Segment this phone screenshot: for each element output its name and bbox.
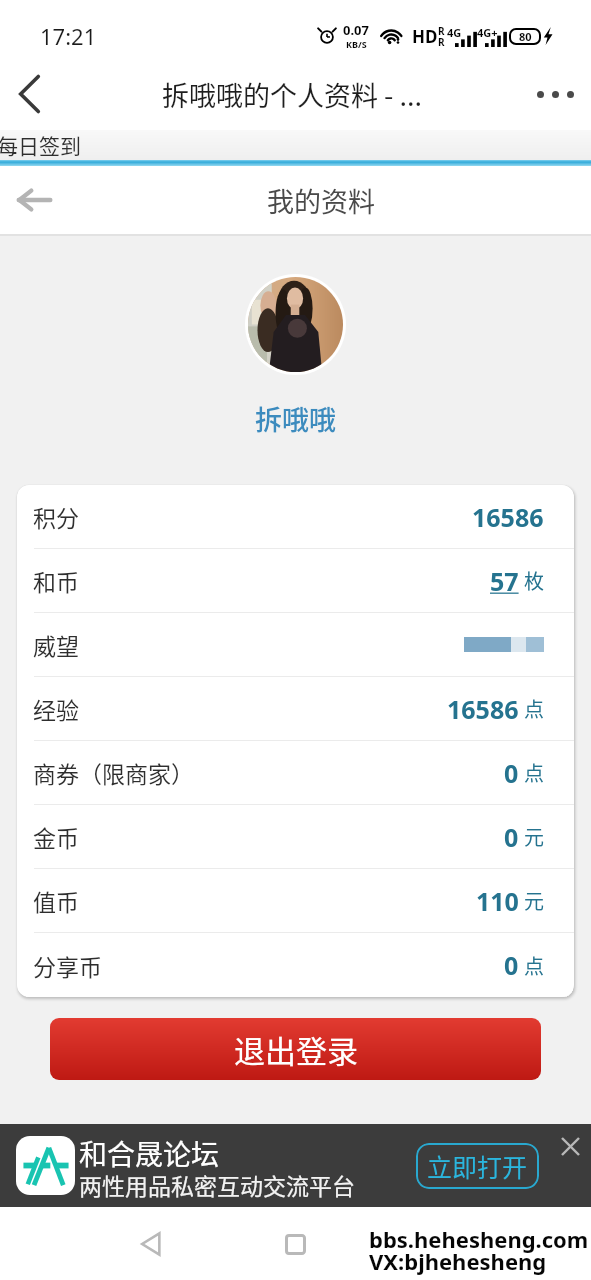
button[interactable]: 和币: [17, 549, 574, 613]
button[interactable]: 立即打开: [416, 1143, 539, 1189]
staticText: 0.07: [343, 21, 369, 39]
staticText: R: [438, 35, 445, 49]
button[interactable]: Home: [272, 1221, 318, 1267]
staticText: 80: [519, 29, 532, 44]
staticText: KB/S: [346, 38, 367, 50]
staticText: 0: [504, 820, 519, 854]
button[interactable]: 积分: [17, 485, 574, 549]
staticText: 17:21: [40, 21, 97, 51]
staticText: 威望: [33, 628, 79, 661]
staticText: 分享币: [33, 949, 102, 982]
button[interactable]: 威望: [17, 613, 574, 677]
button[interactable]: More options: [527, 66, 583, 122]
button[interactable]: Back: [6, 172, 62, 228]
staticText: 16586: [472, 500, 544, 534]
staticText: 点: [524, 758, 544, 787]
button[interactable]: 每日签到: [0, 130, 591, 160]
staticText: 金币: [33, 820, 79, 853]
staticText: 拆哦哦: [255, 399, 336, 438]
button[interactable]: 经验: [17, 677, 574, 741]
button[interactable]: 商券（限商家）: [17, 741, 574, 805]
button[interactable]: Back: [1, 66, 57, 122]
staticText: 拆哦哦的个人资料 - ...: [162, 75, 422, 114]
staticText: 和币: [33, 564, 79, 597]
staticText: HD: [412, 25, 438, 48]
staticText: 4G+: [477, 25, 498, 40]
button[interactable]: 金币: [17, 805, 574, 869]
staticText: 值币: [33, 884, 79, 917]
staticText: VX:bjhehesheng: [369, 1246, 547, 1276]
staticText: 元: [524, 886, 544, 915]
staticText: 4G: [447, 25, 462, 40]
button[interactable]: Close ad: [555, 1131, 585, 1161]
staticText: 退出登录: [234, 1027, 358, 1072]
button[interactable]: Profile photo: [248, 277, 343, 372]
button[interactable]: 分享币: [17, 933, 574, 997]
button[interactable]: 值币: [17, 869, 574, 933]
staticText: 0: [504, 756, 519, 790]
staticText: 0: [504, 948, 519, 982]
staticText: 商券（限商家）: [33, 756, 194, 789]
staticText: bbs.hehesheng.com: [369, 1224, 589, 1254]
staticText: 两性用品私密互动交流平台: [79, 1168, 355, 1201]
staticText: 110: [476, 884, 519, 918]
staticText: 我的资料: [267, 181, 375, 220]
staticText: 每日签到: [0, 130, 81, 160]
staticText: 经验: [33, 692, 79, 725]
staticText: 和合晟论坛: [79, 1133, 220, 1174]
staticText: 点: [524, 951, 544, 980]
staticText: 元: [524, 822, 544, 851]
staticText: 57: [490, 564, 519, 598]
staticText: R: [438, 24, 445, 38]
staticText: 积分: [33, 500, 79, 533]
staticText: 点: [524, 694, 544, 723]
staticText: 立即打开: [427, 1148, 528, 1184]
staticText: 16586: [447, 692, 519, 726]
button[interactable]: Back: [128, 1221, 174, 1267]
staticText: 枚: [524, 566, 544, 595]
button[interactable]: 退出登录: [50, 1018, 541, 1080]
